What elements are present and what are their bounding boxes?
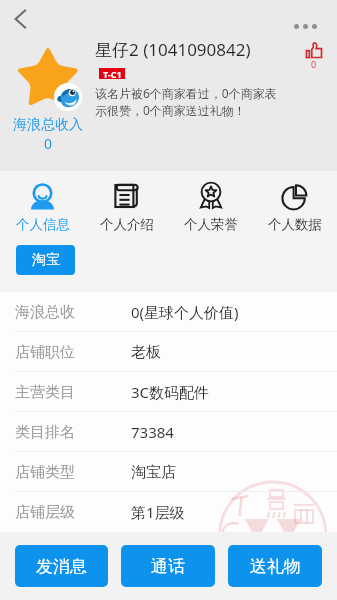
staticText: 73384: [131, 422, 174, 442]
button[interactable]: 发消息: [15, 545, 108, 587]
staticText: 店铺类型: [15, 463, 131, 482]
staticText: 送礼物: [250, 556, 301, 577]
staticText: 通话: [151, 556, 185, 577]
staticText: 0: [311, 58, 317, 70]
button[interactable]: 个人信息: [0, 171, 85, 237]
button[interactable]: 店铺职位: [0, 332, 337, 372]
staticText: 海浪总收入: [13, 116, 83, 134]
button[interactable]: 店铺类型: [0, 452, 337, 492]
staticText: 星仔2 (1041090842): [95, 38, 251, 61]
button[interactable]: Like: [306, 42, 322, 70]
button[interactable]: 个人介绍: [85, 171, 169, 237]
button[interactable]: Back: [4, 3, 36, 35]
button[interactable]: 通话: [121, 545, 215, 587]
button[interactable]: 送礼物: [228, 545, 322, 587]
staticText: 老板: [131, 343, 161, 362]
button[interactable]: 主营类目: [0, 372, 337, 412]
staticText: 该名片被6个商家看过，0个商家表示很赞，0个商家送过礼物！: [95, 85, 281, 119]
button[interactable]: 店铺层级: [0, 492, 337, 532]
staticText: 海浪总收: [15, 303, 131, 322]
staticText: 淘宝店: [131, 463, 176, 482]
staticText: 淘宝: [32, 251, 60, 269]
staticText: 类目排名: [15, 423, 131, 442]
staticText: 店铺职位: [15, 343, 131, 362]
staticText: 店铺层级: [15, 503, 131, 522]
button[interactable]: 个人数据: [253, 171, 337, 237]
staticText: 0(星球个人价值): [131, 302, 239, 322]
button[interactable]: 淘宝: [16, 245, 75, 275]
staticText: 3C数码配件: [131, 382, 210, 402]
button[interactable]: More options: [290, 20, 321, 33]
staticText: 发消息: [36, 556, 87, 577]
staticText: T-C1: [103, 68, 122, 79]
staticText: 个人荣誉: [184, 216, 238, 233]
button[interactable]: 类目排名: [0, 412, 337, 452]
staticText: 第1层级: [131, 502, 185, 522]
button[interactable]: 个人荣誉: [169, 171, 253, 237]
staticText: 个人数据: [268, 216, 322, 233]
staticText: 主营类目: [15, 383, 131, 402]
staticText: 个人介绍: [100, 216, 154, 233]
staticText: 0: [44, 134, 53, 153]
button[interactable]: 海浪总收: [0, 292, 337, 332]
staticText: 个人信息: [16, 216, 70, 233]
